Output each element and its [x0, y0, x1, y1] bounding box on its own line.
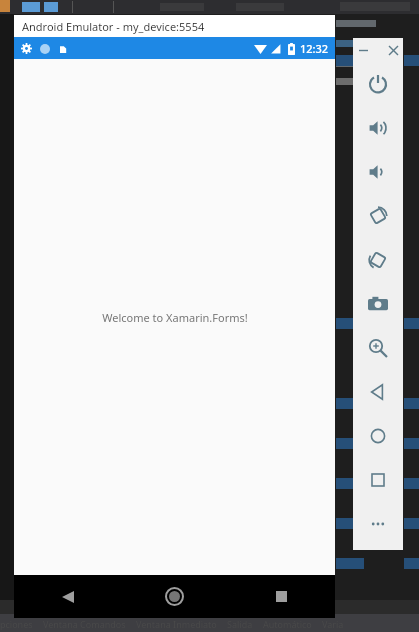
button[interactable]: Recent apps [228, 575, 335, 618]
button[interactable]: Rotate left [353, 194, 403, 238]
button[interactable]: Power [353, 62, 403, 106]
button[interactable]: Rotate right [353, 238, 403, 282]
staticText: Android Emulator - my_device:5554 [22, 19, 205, 34]
button[interactable]: Home [353, 414, 403, 458]
staticText: Welcome to Xamarin.Forms! [102, 310, 248, 325]
button[interactable]: Close [384, 41, 402, 59]
button[interactable]: Home [121, 575, 228, 618]
button[interactable]: More [353, 502, 403, 546]
button[interactable]: Zoom [353, 326, 403, 370]
button[interactable]: Back [14, 575, 121, 618]
staticText: 12:32 [300, 41, 329, 56]
button[interactable]: Volume up [353, 106, 403, 150]
button[interactable]: Overview [353, 458, 403, 502]
button[interactable]: Minimize [354, 41, 372, 59]
button[interactable]: Back [353, 370, 403, 414]
button[interactable]: Volume down [353, 150, 403, 194]
button[interactable]: Screenshot [353, 282, 403, 326]
